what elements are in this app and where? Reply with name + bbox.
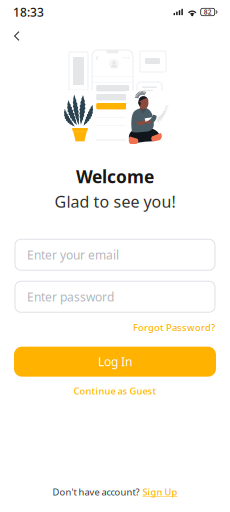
staticText: Glad to see you! xyxy=(54,191,175,212)
staticText: Don't have account? xyxy=(52,486,139,498)
button[interactable]: Continue as Guest xyxy=(73,381,156,401)
staticText: Enter your email xyxy=(27,247,119,263)
staticText: Forgot Password? xyxy=(133,321,215,334)
button[interactable]: Enter password xyxy=(15,281,215,312)
staticText: 18:33 xyxy=(13,4,44,20)
button[interactable]: Forgot Password? xyxy=(133,321,215,334)
button[interactable]: Back xyxy=(6,25,28,47)
staticText: Continue as Guest xyxy=(73,385,156,397)
staticText: Log In xyxy=(98,354,132,370)
staticText: Sign Up xyxy=(142,486,177,498)
staticText: Enter password xyxy=(27,289,114,305)
button[interactable]: Log In xyxy=(14,347,216,377)
button[interactable]: Enter your email xyxy=(15,239,215,270)
button[interactable]: Sign Up xyxy=(142,486,177,498)
staticText: Welcome xyxy=(76,165,154,188)
staticText: 82 xyxy=(204,8,212,16)
